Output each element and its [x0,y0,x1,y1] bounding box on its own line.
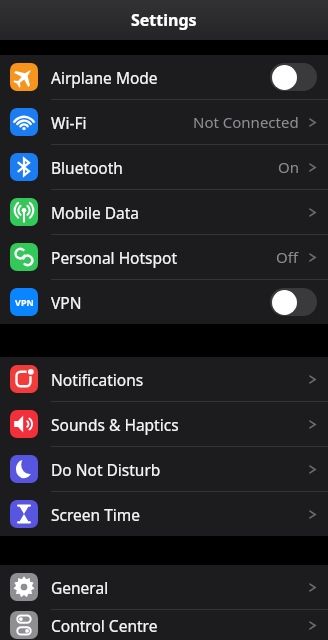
staticText: Control Centre [51,615,158,636]
button[interactable]: Personal Hotspot [0,235,328,280]
staticText: Notifications [51,369,144,390]
button[interactable]: Do Not Disturb [0,447,328,492]
staticText: Do Not Disturb [51,459,161,480]
staticText: Screen Time [51,504,140,525]
button[interactable]: Mobile Data [0,190,328,235]
button[interactable]: VPN [0,280,328,324]
staticText: Mobile Data [51,202,140,223]
button[interactable]: Wi-Fi [0,100,328,145]
staticText: Airplane Mode [51,67,158,88]
staticText: General [51,577,109,598]
staticText: Settings [131,9,197,31]
staticText: Bluetooth [51,157,123,178]
staticText: VPN [51,292,82,313]
button[interactable]: General [0,565,328,610]
button[interactable]: Bluetooth [0,145,328,190]
staticText: Sounds & Haptics [51,414,179,435]
button[interactable]: Control Centre [0,610,328,640]
staticText: Off [276,247,299,267]
staticText: Wi-Fi [51,112,87,133]
button[interactable]: Notifications [0,357,328,402]
button[interactable]: Sounds & Haptics [0,402,328,447]
button[interactable]: Screen Time [0,492,328,536]
staticText: On [278,157,299,177]
staticText: Personal Hotspot [51,247,178,268]
button[interactable]: Airplane Mode [0,55,328,100]
staticText: Not Connected [193,112,299,132]
staticText: VPN [15,296,34,308]
